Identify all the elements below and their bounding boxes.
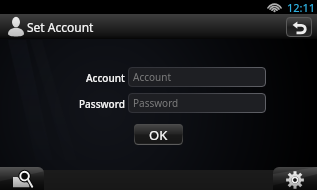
staticText: Password	[79, 97, 125, 111]
other: Wi-Fi signal	[267, 2, 282, 13]
button[interactable]: Back	[286, 17, 312, 37]
staticText: Password	[133, 96, 179, 110]
staticText: 12:11	[287, 0, 316, 14]
button[interactable]: OK	[134, 124, 183, 145]
button[interactable]: Password	[128, 93, 266, 113]
staticText: OK	[149, 126, 168, 144]
button[interactable]: Account	[128, 67, 266, 87]
staticText: Set Account	[27, 19, 94, 35]
staticText: Account	[133, 70, 172, 84]
button[interactable]: Browse files	[0, 167, 44, 190]
button[interactable]: Settings	[273, 167, 317, 190]
staticText: Account	[86, 71, 125, 85]
